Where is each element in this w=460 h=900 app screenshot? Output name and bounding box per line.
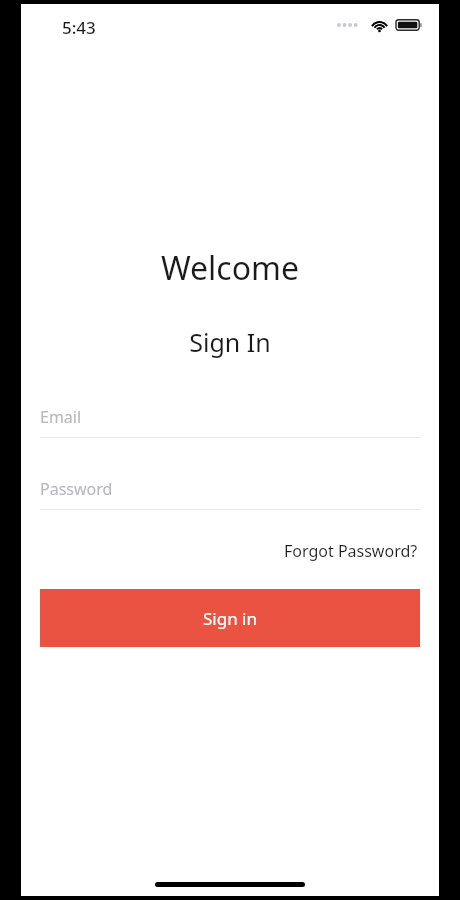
button[interactable]: Sign in <box>40 589 420 647</box>
staticText: Forgot Password? <box>284 540 418 562</box>
button[interactable]: Forgot Password? <box>282 536 420 566</box>
staticText: Email <box>40 406 82 428</box>
other: Wi-Fi <box>370 18 389 32</box>
button[interactable]: Password <box>40 478 420 510</box>
other: Battery <box>396 18 423 32</box>
staticText: Sign in <box>203 607 257 630</box>
other: Cellular signal <box>337 18 363 32</box>
staticText: Sign In <box>21 325 439 359</box>
staticText: Welcome <box>21 246 439 290</box>
staticText: 5:43 <box>62 16 96 39</box>
button[interactable]: Email <box>40 406 420 438</box>
staticText: Password <box>40 478 113 500</box>
